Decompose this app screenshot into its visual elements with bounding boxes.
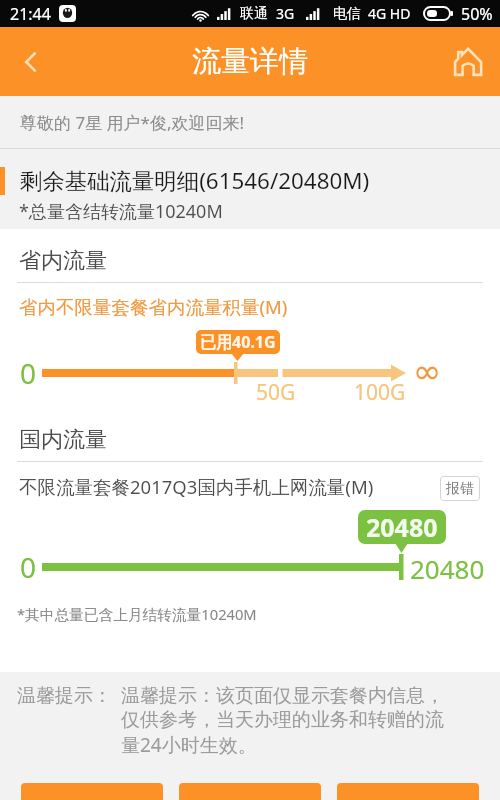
staticText: 流量详情 (192, 43, 308, 80)
staticText: *总量含结转流量10240M (19, 199, 223, 224)
staticText: 省内不限量套餐省内流量积量(M) (19, 294, 288, 319)
staticText: 20480 (410, 551, 485, 586)
button[interactable]: Back (6, 37, 56, 87)
staticText: 20480 (366, 510, 438, 544)
staticText: 剩余基础流量明细(61546/20480M) (20, 165, 370, 196)
staticText: 50% (461, 3, 493, 25)
staticText: 4G HD (368, 4, 411, 23)
staticText: 0 (20, 548, 37, 586)
staticText: 0 (20, 354, 37, 392)
staticText: 100G (354, 378, 406, 407)
staticText: 不限流量套餐2017Q3国内手机上网流量(M) (19, 474, 374, 499)
staticText: 省内流量 (19, 247, 107, 275)
staticText: 仅供参考，当天办理的业务和转赠的流 (121, 708, 444, 732)
staticText: 联通 (240, 5, 268, 23)
button[interactable] (337, 783, 479, 800)
button[interactable]: 报错 (440, 476, 480, 501)
staticText: 50G (256, 378, 296, 407)
button[interactable] (21, 783, 163, 800)
staticText: 温馨提示：该页面仅显示套餐内信息， (121, 684, 444, 708)
staticText: 21:44 (10, 3, 51, 25)
staticText: 国内流量 (19, 426, 107, 454)
staticText: 已用40.1G (200, 331, 276, 353)
staticText: 3G (276, 4, 295, 23)
staticText: *其中总量已含上月结转流量10240M (17, 604, 257, 624)
button[interactable] (179, 783, 321, 800)
staticText: 温馨提示： (17, 684, 112, 708)
staticText: 尊敬的 7星 用户*俊,欢迎回来! (20, 111, 245, 134)
staticText: 量24小时生效。 (121, 732, 257, 758)
staticText: 报错 (446, 480, 474, 498)
button[interactable]: Home (442, 37, 492, 87)
staticText: 电信 (333, 5, 361, 23)
staticText: ∞ (413, 351, 442, 391)
